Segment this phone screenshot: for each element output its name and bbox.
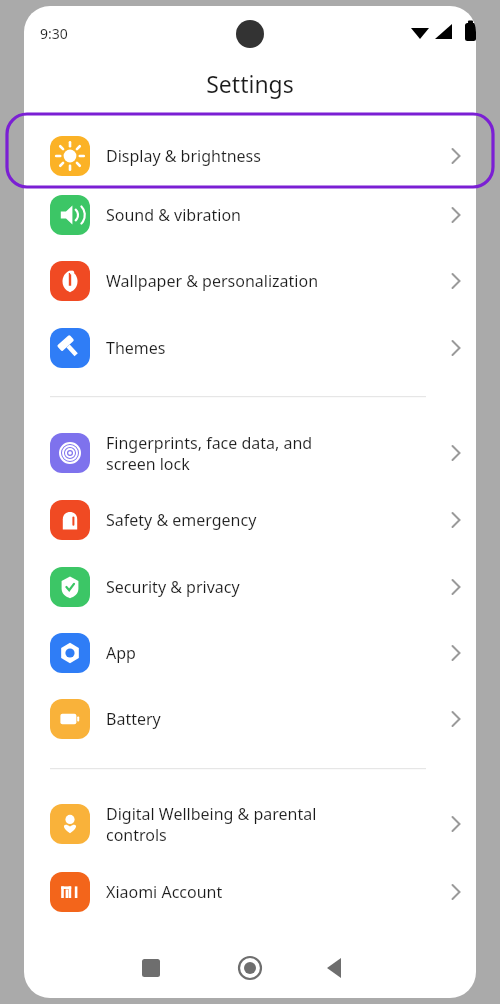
button[interactable]: App [24, 624, 476, 682]
staticText: App [106, 642, 436, 664]
button[interactable]: Sound & vibration [24, 186, 476, 244]
button[interactable]: Themes [24, 319, 476, 377]
staticText: Display & brightness [106, 145, 436, 167]
button[interactable]: Wallpaper & personalization [24, 252, 476, 310]
staticText: Fingerprints, face data, and screen lock [106, 432, 436, 475]
button[interactable]: Display & brightness [24, 127, 476, 185]
staticText: 9:30 [40, 24, 68, 43]
button[interactable]: Safety & emergency [24, 491, 476, 549]
button[interactable]: Digital Wellbeing & parental controls [24, 792, 476, 856]
staticText: Xiaomi Account [106, 881, 436, 903]
staticText: Sound & vibration [106, 204, 436, 226]
button[interactable]: Battery [24, 690, 476, 748]
staticText: Battery [106, 708, 436, 730]
staticText: Settings [206, 68, 294, 99]
staticText: Security & privacy [106, 576, 436, 598]
button[interactable]: Security & privacy [24, 558, 476, 616]
button[interactable] [7, 114, 493, 187]
button[interactable]: Xiaomi Account [24, 863, 476, 921]
staticText: Safety & emergency [106, 509, 436, 531]
staticText: Wallpaper & personalization [106, 270, 436, 292]
staticText: Digital Wellbeing & parental controls [106, 803, 436, 846]
staticText: Themes [106, 337, 436, 359]
button[interactable]: Fingerprints, face data, and screen lock [24, 421, 476, 485]
